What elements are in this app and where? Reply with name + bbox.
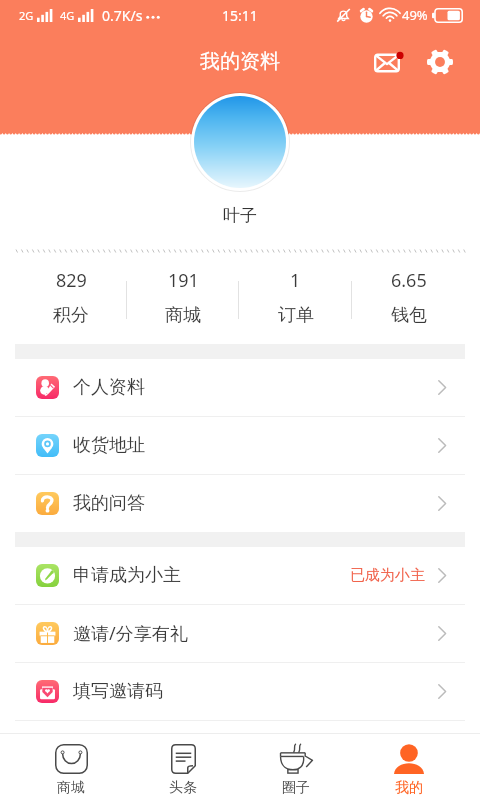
staticText: 我的资料 — [200, 49, 280, 74]
staticText: 1 — [290, 268, 301, 293]
staticText: 15:11 — [222, 6, 258, 25]
button[interactable]: 收货地址 — [0, 417, 480, 474]
staticText: 积分 — [53, 304, 89, 327]
button[interactable]: 邀请/分享有礼 — [0, 605, 480, 662]
staticText: 收货地址 — [73, 434, 145, 457]
button[interactable]: 我的 — [352, 734, 465, 800]
staticText: 我的问答 — [73, 492, 145, 515]
button[interactable]: 个人资料 — [0, 359, 480, 416]
staticText: 商城 — [165, 304, 201, 327]
button[interactable]: Messages — [370, 46, 404, 80]
staticText: 申请成为小主 — [73, 564, 181, 587]
button[interactable]: 填写邀请码 — [0, 663, 480, 720]
button[interactable]: 1 — [239, 268, 352, 327]
button[interactable] — [190, 92, 290, 192]
staticText: 个人资料 — [73, 376, 145, 399]
staticText: 叶子 — [223, 205, 257, 226]
staticText: 钱包 — [391, 304, 427, 327]
button[interactable]: 圈子 — [239, 734, 352, 800]
staticText: 2G — [19, 8, 34, 23]
staticText: 我的 — [395, 779, 423, 797]
staticText: 头条 — [169, 779, 197, 797]
button[interactable]: 商城 — [15, 734, 127, 800]
button[interactable]: Settings — [422, 44, 458, 80]
button[interactable]: 6.65 — [352, 268, 465, 327]
staticText: 已成为小主 — [350, 566, 425, 585]
button[interactable]: 申请成为小主 — [0, 547, 480, 604]
staticText: 6.65 — [391, 268, 427, 293]
staticText: 4G — [60, 8, 75, 23]
staticText: 订单 — [278, 304, 314, 327]
button[interactable]: 我的问答 — [0, 475, 480, 532]
staticText: 191 — [168, 268, 199, 293]
staticText: 829 — [56, 268, 87, 293]
staticText: 0.7K/s — [102, 6, 143, 25]
staticText: 圈子 — [282, 779, 310, 797]
staticText: 商城 — [57, 779, 85, 797]
staticText: 填写邀请码 — [73, 680, 163, 703]
staticText: 49% — [402, 6, 428, 24]
button[interactable]: 头条 — [127, 734, 239, 800]
button[interactable]: 191 — [127, 268, 239, 327]
staticText: 邀请/分享有礼 — [73, 621, 188, 646]
button[interactable]: 829 — [15, 268, 127, 327]
